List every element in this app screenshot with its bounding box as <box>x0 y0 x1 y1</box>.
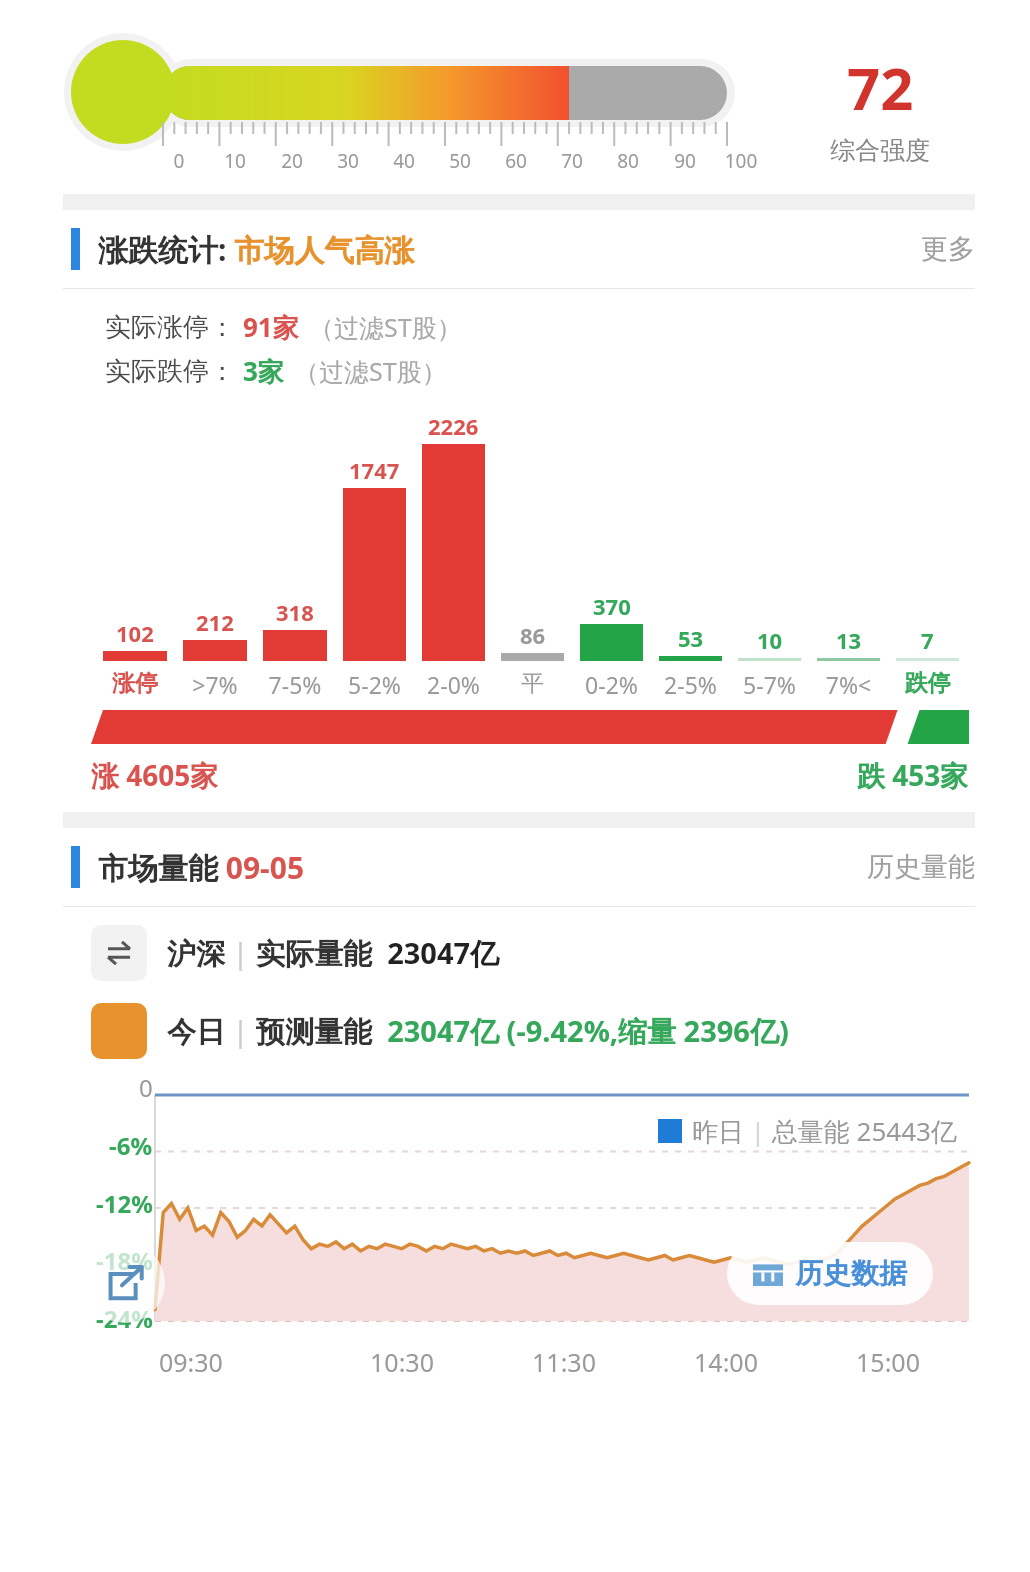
staticText: 历史量能 <box>867 850 975 884</box>
staticText: 50 <box>438 148 482 174</box>
staticText: 1747 <box>349 455 400 485</box>
staticText: 0-2% <box>572 669 651 700</box>
staticText: >7% <box>175 669 255 700</box>
staticText: 5-2% <box>335 669 414 700</box>
staticText: 40 <box>382 148 426 174</box>
button[interactable] <box>91 710 969 744</box>
staticText: 11:30 <box>483 1345 645 1379</box>
staticText: 实际涨停： <box>105 311 235 344</box>
staticText: 0 <box>157 148 201 174</box>
staticText: 10 <box>757 625 783 655</box>
staticText: -18% <box>96 1244 153 1277</box>
staticText: 14:00 <box>645 1345 807 1379</box>
other: 切换市场 <box>91 925 147 981</box>
staticText: 0 <box>139 1071 153 1104</box>
staticText: 今日 | 预测量能 23047亿 (-9.42%,缩量 2396亿) <box>167 1011 789 1051</box>
staticText: 平 <box>493 669 572 698</box>
staticText: 历史数据 <box>795 1256 907 1291</box>
staticText: 102 <box>116 618 154 648</box>
staticText: 70 <box>550 148 594 174</box>
staticText: （过滤ST股） <box>309 310 462 344</box>
staticText: 7-5% <box>255 669 335 700</box>
staticText: 综合强度 <box>830 135 930 166</box>
staticText: 更多 <box>921 232 975 266</box>
staticText: 沪深 | 实际量能 23047亿 <box>167 933 500 973</box>
staticText: 5-7% <box>730 669 809 700</box>
staticText: 20 <box>270 148 314 174</box>
button[interactable]: 涨跌统计: 市场人气高涨 <box>63 210 975 288</box>
button[interactable]: 切换市场 <box>91 925 975 981</box>
staticText: 86 <box>520 620 546 650</box>
staticText: -6% <box>109 1129 153 1162</box>
staticText: 10:30 <box>321 1345 483 1379</box>
staticText: 7 <box>921 625 934 655</box>
staticText: 2226 <box>428 411 479 441</box>
staticText: 30 <box>326 148 370 174</box>
staticText: 15:00 <box>807 1345 969 1379</box>
button[interactable]: 今日 | 预测量能 23047亿 (-9.42%,缩量 2396亿) <box>91 1003 975 1059</box>
staticText: 318 <box>276 597 314 627</box>
staticText: 2-5% <box>651 669 730 700</box>
staticText: 212 <box>196 607 234 637</box>
staticText: 09:30 <box>159 1345 321 1379</box>
staticText: 10 <box>213 148 257 174</box>
staticText: 3家 <box>243 353 284 389</box>
staticText: 60 <box>494 148 538 174</box>
staticText: 2-0% <box>414 669 493 700</box>
button[interactable]: 市场量能 09-05 <box>63 828 975 906</box>
staticText: 实际跌停： <box>105 355 235 388</box>
staticText: 昨日 | 总量能 25443亿 <box>692 1113 957 1149</box>
staticText: 13 <box>836 625 862 655</box>
staticText: 72 <box>847 48 914 127</box>
staticText: 7%< <box>809 669 888 700</box>
staticText: 跌 453家 <box>857 756 969 794</box>
staticText: 90 <box>663 148 707 174</box>
staticText: 53 <box>678 623 704 653</box>
staticText: 跌停 <box>888 669 967 698</box>
staticText: 80 <box>606 148 650 174</box>
staticText: -24% <box>96 1302 153 1335</box>
staticText: 涨 4605家 <box>91 756 219 794</box>
staticText: 370 <box>593 591 631 621</box>
staticText: 91家 <box>243 309 299 345</box>
staticText: 涨跌统计: 市场人气高涨 <box>98 229 415 270</box>
button[interactable]: 分享 <box>85 1243 165 1323</box>
button[interactable]: 历史数据 <box>727 1242 933 1305</box>
staticText: 涨停 <box>95 669 175 698</box>
staticText: （过滤ST股） <box>294 354 447 388</box>
staticText: -12% <box>96 1187 153 1220</box>
staticText: 市场量能 09-05 <box>98 847 305 888</box>
staticText: 100 <box>719 148 763 174</box>
